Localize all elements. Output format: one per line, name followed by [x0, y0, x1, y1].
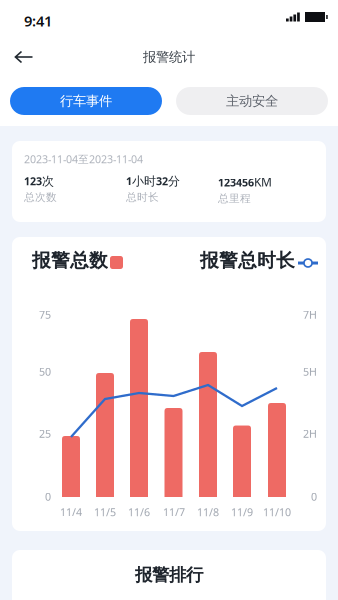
- staticText: 32: [156, 174, 168, 188]
- staticText: KM: [254, 174, 272, 190]
- staticText: 主动安全: [226, 93, 278, 109]
- staticText: 报警总时长: [200, 249, 295, 272]
- staticText: 报警统计: [143, 49, 195, 65]
- staticText: 11/9: [231, 505, 253, 519]
- staticText: 123: [24, 174, 42, 188]
- staticText: 0: [45, 489, 51, 504]
- staticText: 11/10: [263, 505, 291, 519]
- staticText: 1: [126, 174, 132, 188]
- staticText: 25: [39, 426, 51, 441]
- staticText: 11/8: [197, 505, 219, 519]
- staticText: 11/7: [163, 505, 185, 519]
- staticText: 2H: [303, 426, 317, 441]
- staticText: 总时长: [126, 191, 159, 204]
- staticText: 11/6: [128, 505, 150, 519]
- staticText: 7H: [303, 307, 317, 322]
- staticText: 9:41: [24, 11, 52, 30]
- staticText: 报警总数: [32, 249, 108, 272]
- staticText: 0: [311, 489, 317, 504]
- staticText: 总里程: [218, 192, 251, 205]
- staticText: 75: [39, 307, 51, 322]
- staticText: 总次数: [24, 191, 57, 204]
- staticText: 分: [168, 174, 180, 189]
- staticText: 11/4: [60, 505, 82, 519]
- staticText: 123456: [218, 175, 254, 190]
- button[interactable]: 行车事件: [10, 87, 162, 115]
- staticText: 2023-11-04至2023-11-04: [24, 152, 143, 166]
- staticText: 报警排行: [135, 564, 203, 586]
- button[interactable]: Back: [4, 40, 44, 74]
- staticText: 小时: [132, 174, 156, 189]
- staticText: 5H: [303, 364, 317, 379]
- staticText: 行车事件: [60, 93, 112, 109]
- staticText: 次: [42, 174, 54, 189]
- button[interactable]: 主动安全: [176, 87, 328, 115]
- staticText: 11/5: [94, 505, 116, 519]
- staticText: 50: [39, 364, 51, 379]
